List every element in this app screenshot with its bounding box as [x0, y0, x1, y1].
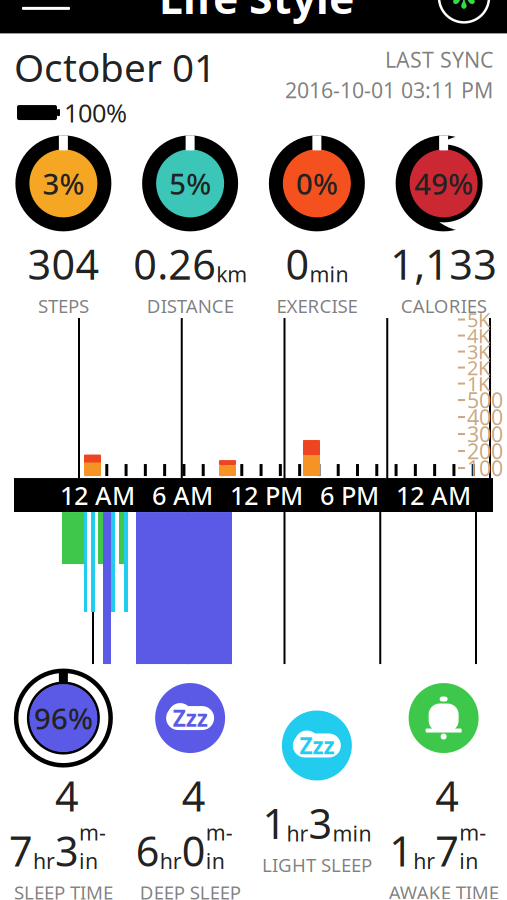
button[interactable]: Bluetooth — [433, 0, 495, 28]
staticText: 400 — [467, 403, 503, 431]
button[interactable]: Zzz — [253, 697, 380, 877]
staticText: 3% — [42, 164, 84, 203]
staticText: SLEEP TIME — [14, 880, 113, 900]
staticText: 1K — [467, 370, 490, 397]
staticText: min — [79, 818, 106, 875]
staticText: CALORIES — [401, 293, 487, 318]
staticText: hr — [33, 846, 55, 875]
staticText: Life Style — [159, 0, 354, 26]
staticText: hr — [160, 846, 182, 875]
button[interactable]: WORKOUT — [127, 887, 254, 900]
staticText: 2016-10-01 03:11 PM — [285, 76, 493, 104]
staticText: 12 PM — [230, 478, 303, 512]
staticText: EXERCISE — [276, 293, 357, 318]
staticText: min — [459, 818, 486, 875]
staticText: 40 — [182, 768, 206, 878]
button[interactable]: 0% — [253, 135, 380, 318]
button[interactable]: 96% — [0, 670, 127, 900]
button[interactable]: HEART RATE — [380, 887, 507, 900]
staticText: 3 — [308, 795, 332, 850]
staticText: 500 — [467, 386, 503, 414]
staticText: 6 PM — [320, 478, 379, 512]
staticText: LIGHT SLEEP — [262, 852, 372, 877]
staticText: min — [332, 819, 371, 847]
staticText: 0 — [285, 236, 309, 291]
button[interactable]: Zzz — [127, 670, 254, 900]
staticText: 100% — [64, 96, 127, 129]
staticText: 6 AM — [152, 478, 213, 512]
button[interactable]: Menu — [12, 0, 80, 20]
staticText: 12 AM — [396, 478, 471, 512]
staticText: hr — [413, 846, 435, 875]
staticText: STEPS — [38, 293, 89, 318]
staticText: km — [216, 260, 247, 288]
button[interactable]: 5% — [127, 135, 254, 318]
staticText: 6 — [136, 823, 160, 878]
staticText: AWAKE TIME — [389, 880, 499, 900]
staticText: 100 — [467, 454, 503, 482]
staticText: 96% — [34, 699, 93, 738]
staticText: 12 AM — [60, 478, 135, 512]
staticText: 4K — [467, 322, 490, 349]
staticText: 0.26 — [133, 236, 216, 291]
staticText: 7 — [9, 823, 33, 878]
staticText: 5% — [169, 164, 211, 203]
staticText: Zzz — [173, 703, 208, 733]
staticText: DEEP SLEEP — [140, 880, 241, 900]
staticText: 5K — [467, 306, 490, 333]
staticText: Zzz — [299, 730, 334, 760]
button[interactable]: 1 — [380, 670, 507, 900]
staticText: min — [309, 260, 348, 288]
staticText: 2K — [467, 354, 490, 381]
staticText: ✻ — [450, 0, 477, 15]
staticText: 300 — [467, 420, 503, 448]
staticText: October 01 — [14, 41, 216, 93]
staticText: 304 — [27, 236, 99, 291]
staticText: hr — [286, 819, 308, 847]
staticText: min — [206, 818, 233, 875]
staticText: 1,133 — [390, 236, 497, 291]
staticText: 1 — [389, 823, 413, 878]
staticText: 49% — [414, 164, 473, 203]
staticText: 1 — [262, 795, 286, 850]
staticText: 0% — [296, 164, 338, 203]
staticText: 3K — [467, 338, 490, 365]
button[interactable]: 3% — [0, 135, 127, 318]
staticText: 200 — [467, 437, 503, 465]
button[interactable]: 49% — [380, 135, 507, 318]
staticText: 43 — [55, 768, 79, 878]
staticText: LAST SYNC — [385, 45, 493, 74]
staticText: DISTANCE — [147, 293, 234, 318]
staticText: 47 — [435, 768, 459, 878]
